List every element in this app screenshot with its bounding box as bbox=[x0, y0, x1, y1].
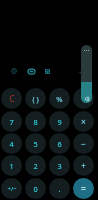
button[interactable]: History bbox=[6, 63, 22, 79]
staticText: 2 bbox=[33, 161, 38, 171]
button[interactable]: 8 bbox=[25, 111, 46, 132]
button[interactable]: 7 bbox=[1, 111, 22, 132]
staticText: 3 bbox=[57, 161, 62, 171]
button[interactable]: C bbox=[1, 88, 22, 109]
staticText: = bbox=[81, 183, 86, 194]
button[interactable]: +/− bbox=[1, 178, 22, 199]
staticText: − bbox=[81, 138, 86, 149]
staticText: C bbox=[9, 93, 15, 104]
button[interactable]: Mode bbox=[23, 63, 39, 79]
staticText: × bbox=[81, 116, 86, 127]
button[interactable]: . bbox=[49, 178, 70, 199]
button[interactable]: 1 bbox=[1, 155, 22, 176]
button[interactable]: 2 bbox=[25, 155, 46, 176]
staticText: 9 bbox=[57, 117, 62, 127]
button[interactable]: 6 bbox=[49, 133, 70, 154]
staticText: + bbox=[81, 160, 86, 171]
button[interactable]: 3 bbox=[49, 155, 70, 176]
staticText: 1 bbox=[9, 161, 14, 171]
button[interactable]: − bbox=[73, 133, 94, 154]
button[interactable]: = bbox=[73, 178, 94, 199]
staticText: 5 bbox=[33, 139, 38, 149]
button[interactable]: 4 bbox=[1, 133, 22, 154]
button[interactable]: Calculator bbox=[39, 63, 55, 79]
staticText: 7 bbox=[9, 117, 14, 127]
staticText: . bbox=[58, 183, 61, 194]
button[interactable]: × bbox=[73, 111, 94, 132]
button[interactable]: More options bbox=[81, 45, 92, 82]
button[interactable]: 9 bbox=[49, 111, 70, 132]
staticText: 0 bbox=[33, 184, 38, 194]
staticText: % bbox=[56, 94, 63, 104]
button[interactable]: + bbox=[73, 155, 94, 176]
staticText: 8 bbox=[33, 117, 38, 127]
button[interactable]: 5 bbox=[25, 133, 46, 154]
button[interactable]: % bbox=[49, 88, 70, 109]
staticText: +/− bbox=[7, 185, 17, 193]
button[interactable]: Delete bbox=[81, 82, 92, 103]
button[interactable]: ( ) bbox=[25, 88, 46, 109]
staticText: 6 bbox=[57, 139, 62, 149]
button[interactable]: 0 bbox=[25, 178, 46, 199]
staticText: ( ) bbox=[32, 94, 39, 104]
staticText: 4 bbox=[9, 139, 14, 149]
